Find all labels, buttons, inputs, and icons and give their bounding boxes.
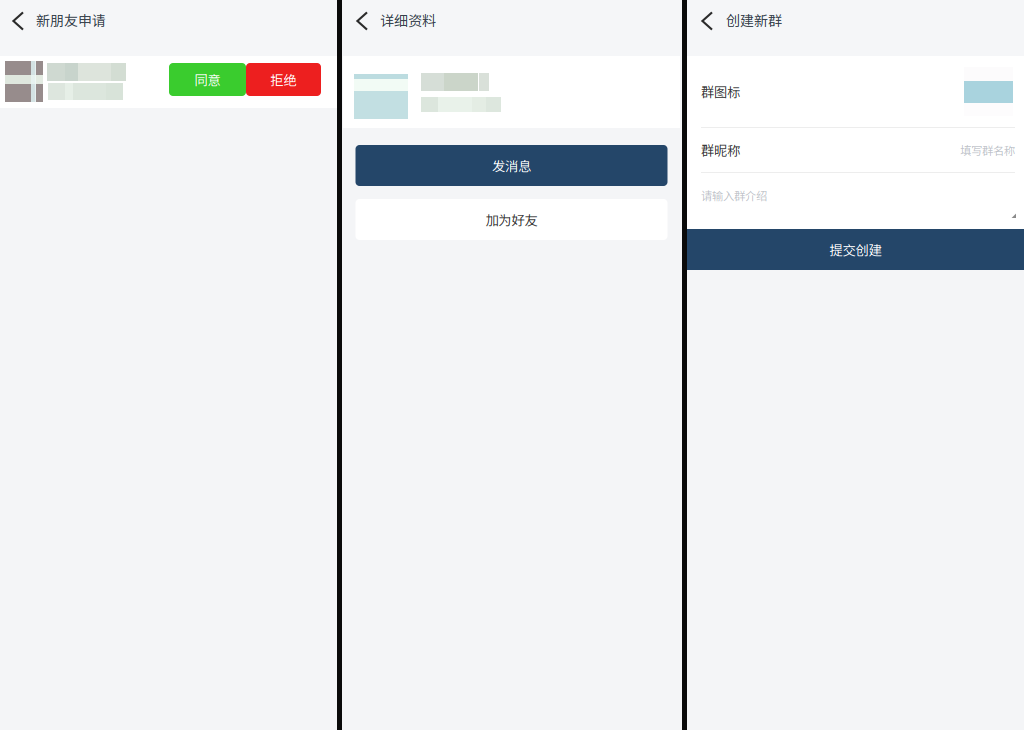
staticText: 请输入群介绍 [701,187,767,203]
staticText: 提交创建 [829,240,881,259]
button[interactable]: 请输入群介绍 [687,173,1024,229]
button[interactable]: 提交创建 [687,229,1024,270]
button[interactable]: Back [687,0,726,40]
staticText: 详细资料 [380,10,436,30]
staticText: 同意 [194,70,220,89]
staticText: 群图标 [701,82,740,101]
staticText: 新朋友申请 [36,10,106,30]
button[interactable]: Back [0,0,36,40]
staticText: 拒绝 [270,70,296,89]
staticText: 发消息 [492,156,531,175]
button[interactable]: 群图标 [687,56,1024,127]
staticText: 群昵称 [701,140,740,160]
staticText: 填写群名称 [960,142,1015,158]
button[interactable]: 加为好友 [355,199,667,240]
staticText: 创建新群 [726,10,782,30]
button[interactable]: Back [343,0,380,40]
staticText: 加为好友 [485,210,537,229]
button[interactable]: 群昵称 [687,128,1024,172]
button[interactable]: 发消息 [355,145,667,186]
button[interactable]: 拒绝 [246,63,321,96]
button[interactable]: 同意 [169,63,246,96]
